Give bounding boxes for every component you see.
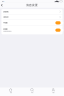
button[interactable]: 振动提醒: [55, 29, 61, 32]
button[interactable]: 新消息通知: [1, 9, 62, 14]
staticText: 9:41: [1, 0, 4, 2]
staticText: 消息免打扰: [3, 16, 8, 18]
button[interactable]: 发现: [21, 87, 43, 93]
button[interactable]: 声音提醒: [55, 21, 61, 24]
staticText: 振动提醒: [3, 28, 7, 30]
button[interactable]: 我的: [43, 87, 64, 93]
staticText: 我的: [52, 92, 54, 93]
staticText: 新消息通知: [3, 11, 8, 12]
staticText: 收到新消息时振动: [3, 30, 11, 32]
button[interactable]: 消息: [0, 87, 21, 93]
staticText: 消息设置: [26, 4, 38, 7]
button[interactable]: Back: [0, 3, 4, 7]
button[interactable]: 消息免打扰: [1, 14, 62, 20]
staticText: 声音提醒: [3, 22, 7, 24]
